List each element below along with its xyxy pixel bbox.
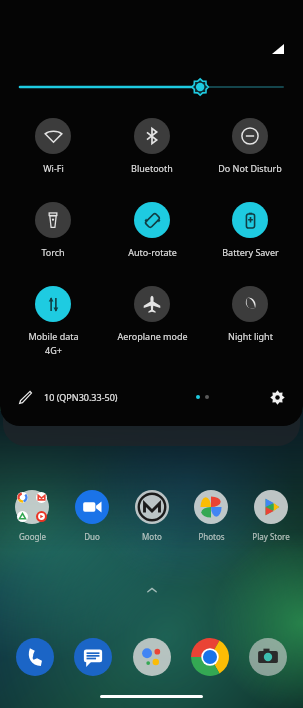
- button[interactable]: Play Store: [243, 487, 299, 542]
- staticText: Battery Saver: [222, 246, 279, 258]
- staticText: Wi-Fi: [43, 162, 64, 174]
- staticText: Auto-rotate: [128, 246, 177, 258]
- button[interactable]: Camera: [245, 634, 291, 680]
- button[interactable]: Night light: [204, 286, 296, 342]
- button[interactable]: Torch: [7, 202, 99, 258]
- staticText: Aeroplane mode: [117, 330, 188, 342]
- button[interactable]: Wi-Fi: [7, 118, 99, 174]
- button[interactable]: Phone: [12, 634, 58, 680]
- staticText: Duo: [84, 531, 100, 542]
- staticText: Torch: [41, 246, 65, 258]
- staticText: Night light: [228, 330, 273, 342]
- button[interactable]: Chrome: [187, 634, 233, 680]
- staticText: Do Not Disturb: [218, 162, 282, 174]
- button[interactable]: Messages: [70, 634, 116, 680]
- button[interactable]: Aeroplane mode: [106, 286, 198, 342]
- button[interactable]: Do Not Disturb: [204, 118, 296, 174]
- staticText: 4G+: [45, 344, 62, 356]
- button[interactable]: Edit tiles: [14, 386, 36, 408]
- button[interactable]: Auto-rotate: [106, 202, 198, 258]
- staticText: Google: [19, 531, 46, 542]
- staticText: Bluetooth: [131, 162, 173, 174]
- staticText: Play Store: [252, 531, 290, 542]
- button[interactable]: Bluetooth: [106, 118, 198, 174]
- staticText: Photos: [198, 531, 225, 542]
- button[interactable]: Assistant: [129, 634, 175, 680]
- staticText: Mobile data: [28, 330, 79, 342]
- button[interactable]: Mobile data: [7, 286, 99, 356]
- staticText: 10 (QPN30.33-50): [44, 391, 118, 403]
- staticText: Moto: [142, 531, 162, 542]
- button[interactable]: Settings: [265, 385, 289, 409]
- button[interactable]: Battery Saver: [204, 202, 296, 258]
- button[interactable]: Moto: [124, 487, 180, 542]
- button[interactable]: Google: [4, 487, 60, 542]
- button[interactable]: Photos: [183, 487, 239, 542]
- button[interactable]: Duo: [64, 487, 120, 542]
